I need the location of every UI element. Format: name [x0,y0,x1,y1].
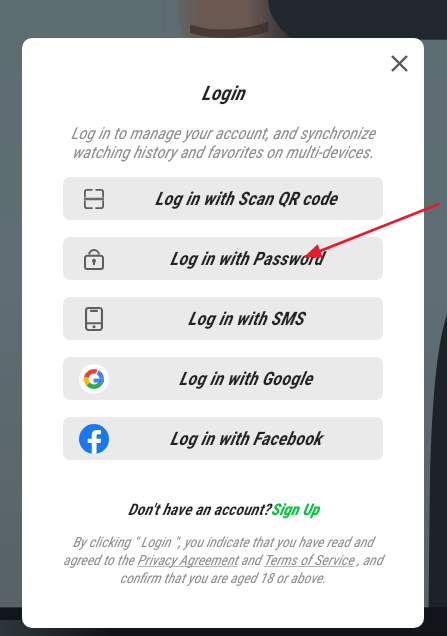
staticText: Sign Up [271,500,319,519]
button[interactable]: Sign Up [271,500,319,519]
staticText: By clicking " Login ", you indicate that… [58,534,388,587]
staticText: Log in with Google [179,368,313,390]
staticText: Log in to manage your account, and synch… [64,124,382,162]
button[interactable]: Log in with Facebook [63,417,383,460]
button[interactable]: Log in with SMS [63,297,383,340]
staticText: Log in with SMS [188,308,304,330]
button[interactable]: Close [379,43,419,83]
staticText: Log in with Password [170,248,323,270]
button[interactable]: Log in with Password [63,237,383,280]
button[interactable]: Log in with Scan QR code [63,177,383,220]
staticText: Login [22,81,424,104]
staticText: Log in with Facebook [170,428,322,450]
staticText: Log in with Scan QR code [155,188,337,210]
button[interactable]: Log in with Google [63,357,383,400]
staticText: Don't have an account? [128,500,271,519]
